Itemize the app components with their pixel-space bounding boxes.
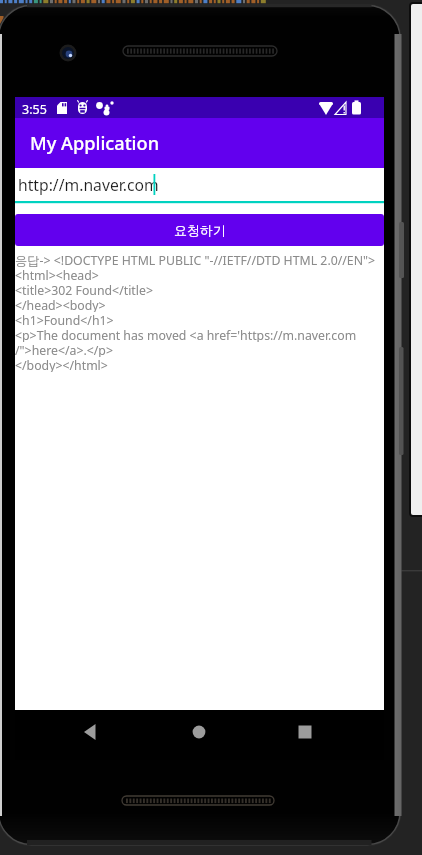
staticText: /">here</a>.</p> bbox=[15, 342, 113, 357]
staticText: My Application bbox=[30, 131, 160, 156]
staticText: 요청하기 bbox=[174, 222, 226, 238]
button[interactable]: Home bbox=[171, 707, 227, 757]
button[interactable]: Back bbox=[64, 707, 120, 757]
staticText: 3:55 bbox=[22, 101, 47, 118]
staticText: </body></html> bbox=[15, 357, 108, 372]
staticText: <p>The document has moved <a href='https… bbox=[15, 327, 357, 342]
button[interactable]: Recents bbox=[277, 707, 333, 757]
staticText: <title>302 Found</title> bbox=[15, 282, 153, 297]
button[interactable]: http://m.naver.com bbox=[15, 168, 384, 214]
staticText: <h1>Found</h1> bbox=[15, 312, 114, 327]
button[interactable]: My Application bbox=[15, 118, 384, 168]
staticText: http://m.naver.com bbox=[18, 174, 159, 195]
staticText: </head><body> bbox=[15, 297, 106, 312]
staticText: <html><head> bbox=[15, 267, 99, 282]
staticText: 응답-> <!DOCTYPE HTML PUBLIC "-//IETF//DTD… bbox=[15, 252, 376, 267]
button[interactable]: 요청하기 bbox=[15, 214, 384, 246]
